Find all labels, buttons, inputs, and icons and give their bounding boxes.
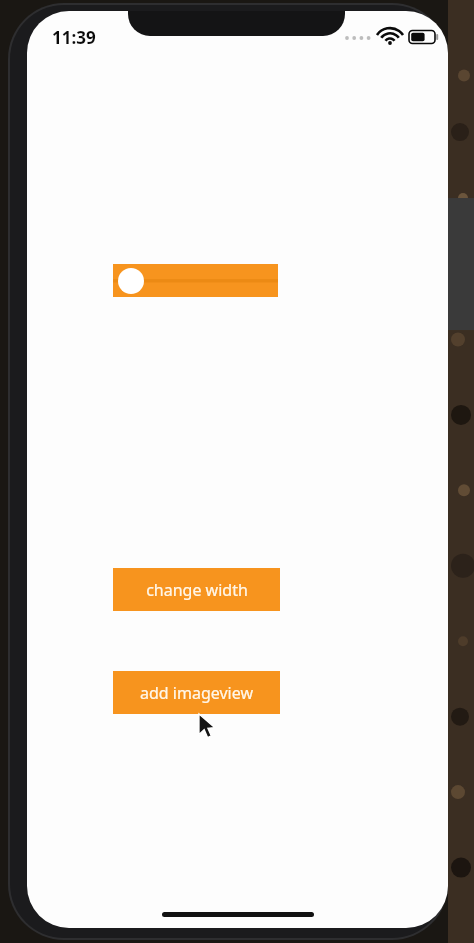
button[interactable]: change width [113, 568, 280, 611]
staticText: add imageview [140, 682, 253, 704]
button[interactable]: add imageview [113, 671, 280, 714]
staticText: 11:39 [52, 26, 96, 49]
staticText: change width [146, 579, 248, 601]
button[interactable] [113, 264, 278, 297]
